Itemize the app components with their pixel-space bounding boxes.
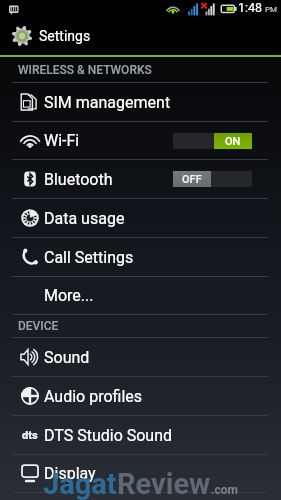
staticText: Review bbox=[117, 467, 211, 500]
staticText: dts bbox=[22, 429, 38, 442]
staticText: Bluetooth bbox=[44, 170, 113, 189]
staticText: Settings bbox=[39, 28, 91, 44]
button[interactable]: Sound bbox=[0, 338, 281, 376]
staticText: More... bbox=[44, 286, 94, 305]
button[interactable]: Wi-Fi on bbox=[173, 133, 252, 149]
button[interactable]: Audio profiles bbox=[0, 377, 281, 415]
staticText: Jagat bbox=[43, 467, 117, 500]
staticText: Wi-Fi bbox=[44, 131, 80, 150]
button[interactable]: More... bbox=[0, 277, 281, 314]
button[interactable]: Call Settings bbox=[0, 238, 281, 276]
staticText: DEVICE bbox=[18, 319, 59, 333]
button[interactable]: SIM management bbox=[0, 83, 281, 121]
button[interactable]: Display bbox=[0, 455, 281, 492]
button[interactable]: Bluetooth off bbox=[173, 171, 252, 187]
staticText: WIRELESS & NETWORKS bbox=[18, 63, 152, 77]
button[interactable]: Bluetooth bbox=[0, 160, 281, 198]
button[interactable]: Data usage bbox=[0, 199, 281, 237]
staticText: OFF bbox=[182, 173, 202, 186]
staticText: ON bbox=[225, 135, 241, 148]
staticText: 1:48 bbox=[238, 0, 263, 14]
staticText: Display bbox=[44, 464, 96, 483]
button[interactable]: dts bbox=[0, 416, 281, 454]
staticText: Audio profiles bbox=[44, 387, 143, 406]
staticText: Call Settings bbox=[44, 248, 134, 267]
staticText: .com bbox=[211, 483, 238, 497]
staticText: DTS Studio Sound bbox=[44, 426, 173, 445]
staticText: PM bbox=[265, 5, 278, 14]
staticText: Sound bbox=[44, 348, 90, 367]
button[interactable]: Wi-Fi bbox=[0, 122, 281, 159]
button[interactable]: Settings bbox=[0, 17, 281, 55]
staticText: SIM management bbox=[44, 93, 171, 112]
staticText: Data usage bbox=[44, 209, 125, 228]
